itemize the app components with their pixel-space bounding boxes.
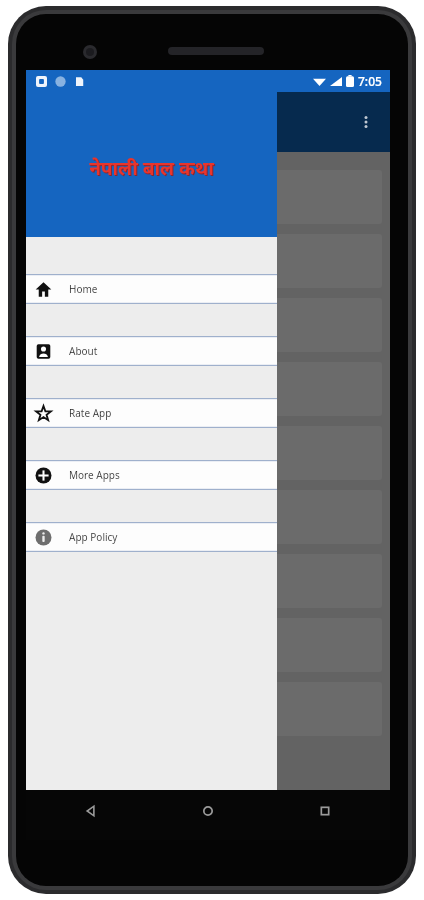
button[interactable] bbox=[34, 234, 382, 288]
button[interactable]: Back bbox=[80, 800, 102, 822]
staticText: Rate App bbox=[69, 406, 112, 420]
button[interactable]: About bbox=[26, 336, 277, 366]
button[interactable]: Home bbox=[26, 274, 277, 304]
button[interactable] bbox=[34, 298, 382, 352]
button[interactable] bbox=[34, 426, 382, 480]
staticText: नेपाली बाल कथा bbox=[89, 155, 214, 181]
button[interactable] bbox=[34, 682, 382, 736]
staticText: App Policy bbox=[69, 530, 118, 544]
staticText: Home bbox=[69, 282, 98, 296]
button[interactable] bbox=[34, 554, 382, 608]
button[interactable]: More options bbox=[352, 108, 380, 136]
button[interactable] bbox=[34, 490, 382, 544]
staticText: More Apps bbox=[69, 468, 120, 482]
staticText: About bbox=[69, 344, 98, 358]
button[interactable]: Home bbox=[197, 800, 219, 822]
button[interactable]: Rate App bbox=[26, 398, 277, 428]
button[interactable] bbox=[34, 362, 382, 416]
button[interactable] bbox=[34, 170, 382, 224]
staticText: नेपाली बाल कथा bbox=[90, 156, 215, 182]
button[interactable]: More Apps bbox=[26, 460, 277, 490]
button[interactable]: App Policy bbox=[26, 522, 277, 552]
button[interactable]: Recents bbox=[314, 800, 336, 822]
button[interactable] bbox=[34, 618, 382, 672]
staticText: 7:05 bbox=[358, 73, 382, 89]
